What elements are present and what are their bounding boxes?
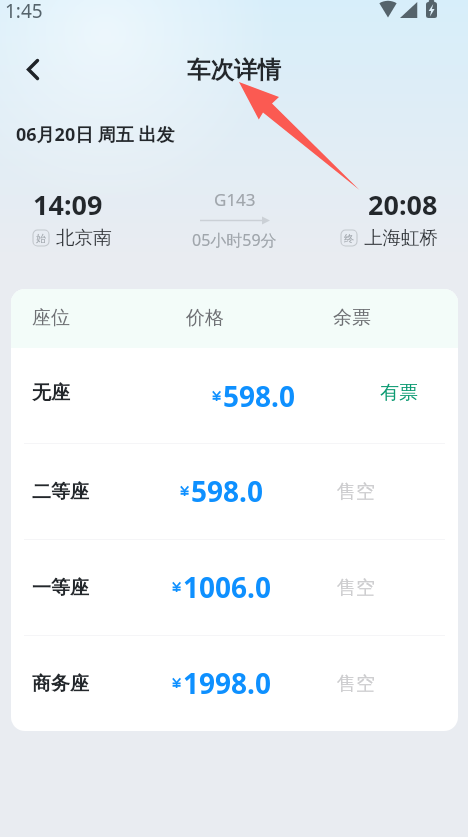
staticText: 售空	[337, 480, 375, 504]
button[interactable]: 二等座	[11, 444, 458, 540]
staticText: 商务座	[32, 672, 89, 696]
staticText: 上海虹桥	[364, 226, 438, 249]
staticText: 1006.0	[183, 568, 271, 606]
staticText: 售空	[337, 672, 375, 696]
staticText: 车次详情	[0, 55, 468, 85]
staticText: 始	[36, 232, 46, 245]
staticText: 1998.0	[183, 664, 271, 702]
staticText: 有票	[380, 381, 418, 405]
staticText: 20:08	[368, 186, 438, 223]
staticText: 座位	[32, 306, 70, 330]
staticText: 一等座	[32, 576, 89, 600]
button[interactable]: 一等座	[11, 540, 458, 636]
staticText: 06月20日 周五 出发	[16, 122, 175, 147]
staticText: 598.0	[191, 472, 263, 510]
button[interactable]: Back	[11, 47, 55, 91]
staticText: 北京南	[56, 226, 112, 249]
button[interactable]: 无座	[11, 348, 458, 444]
staticText: 终	[344, 232, 354, 245]
staticText: 价格	[186, 306, 224, 330]
staticText: 05小时59分	[192, 229, 277, 251]
staticText: 1:45	[5, 0, 43, 22]
staticText: 598.0	[223, 377, 295, 415]
staticText: 二等座	[32, 480, 89, 504]
staticText: 售空	[337, 576, 375, 600]
staticText: 14:09	[33, 186, 103, 223]
staticText: 余票	[333, 306, 371, 330]
button[interactable]: 商务座	[11, 636, 458, 731]
staticText: 无座	[32, 381, 70, 405]
staticText: G143	[214, 188, 256, 211]
